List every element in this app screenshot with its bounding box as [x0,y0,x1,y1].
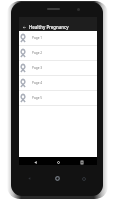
staticText: Page 2 [32,51,43,55]
button[interactable]: Page 3 [19,61,97,76]
button[interactable]: Back [26,175,32,181]
button[interactable]: Recent apps [79,159,85,165]
button[interactable]: Navigate up [19,22,97,31]
button[interactable]: Page 5 [19,91,97,106]
staticText: Page 5 [32,96,43,100]
button[interactable]: Page 4 [19,76,97,91]
button[interactable]: Navigate up [21,24,27,30]
button[interactable]: Home [53,174,62,183]
staticText: Page 4 [32,81,43,85]
button[interactable]: Home [55,159,61,165]
staticText: Healthy Pregnancy [29,24,69,30]
button[interactable]: Page 2 [19,46,97,61]
button[interactable]: Recent apps [81,176,87,182]
staticText: Page 1 [32,36,43,40]
staticText: Page 3 [32,66,43,70]
button[interactable]: Page 1 [19,31,97,46]
button[interactable]: Back [32,159,38,165]
